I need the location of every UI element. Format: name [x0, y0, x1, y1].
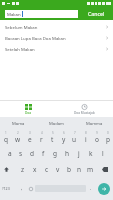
button[interactable]: z: [17, 161, 29, 177]
button[interactable]: f: [37, 145, 49, 161]
button[interactable]: Cancel: [86, 10, 107, 17]
button[interactable]: s: [15, 145, 26, 161]
button[interactable]: Mama: [0, 117, 37, 130]
staticText: Doa Mustajab: [74, 111, 95, 115]
button[interactable]: ?123: [0, 177, 17, 200]
staticText: l: [102, 149, 104, 158]
button[interactable]: n: [74, 161, 85, 177]
staticText: m: [87, 165, 94, 174]
button[interactable]: Setelah Makan: [0, 43, 113, 54]
staticText: h: [65, 149, 70, 158]
staticText: r: [40, 135, 43, 144]
staticText: 8: [85, 131, 87, 135]
button[interactable]: 1: [0, 130, 12, 145]
staticText: Sebelum Makan: [5, 24, 38, 30]
staticText: 7: [74, 131, 76, 135]
button[interactable]: 0: [102, 130, 113, 145]
staticText: Mama: [12, 121, 25, 127]
button[interactable]: h: [61, 145, 73, 161]
button[interactable]: 4: [36, 130, 47, 145]
button[interactable]: Sebelum Makan: [0, 21, 113, 32]
button[interactable]: Mamma: [75, 117, 113, 130]
staticText: Mamma: [86, 121, 103, 127]
button[interactable]: 2: [12, 130, 24, 145]
staticText: a: [8, 149, 12, 158]
staticText: x: [33, 165, 37, 174]
staticText: Cancel: [88, 10, 105, 17]
button[interactable]: c: [41, 161, 52, 177]
staticText: 5: [52, 131, 54, 135]
staticText: s: [19, 149, 23, 158]
staticText: q: [4, 135, 8, 144]
button[interactable]: 9: [91, 130, 102, 145]
staticText: d: [30, 149, 34, 158]
staticText: i: [85, 135, 87, 144]
staticText: 0: [107, 131, 109, 135]
button[interactable]: Doa Mustajab: [56, 101, 113, 117]
staticText: j: [78, 149, 80, 158]
button[interactable]: m: [85, 161, 96, 177]
staticText: 9: [96, 131, 98, 135]
staticText: .: [90, 185, 92, 192]
button[interactable]: Backspace: [96, 161, 113, 177]
button[interactable]: Doa: [0, 101, 56, 117]
button[interactable]: 3: [24, 130, 36, 145]
button[interactable]: Shift: [0, 161, 17, 177]
staticText: ?123: [2, 186, 10, 191]
staticText: 6: [63, 131, 65, 135]
staticText: Madam: [49, 121, 64, 127]
staticText: ,: [21, 185, 23, 192]
staticText: e: [28, 135, 32, 144]
button[interactable]: 8: [80, 130, 91, 145]
staticText: Doa: [25, 111, 32, 115]
button[interactable]: 7: [69, 130, 80, 145]
button[interactable]: k: [85, 145, 97, 161]
button[interactable]: Bacaan Lupa Baca Doa Makan: [0, 32, 113, 43]
staticText: 4: [41, 131, 43, 135]
staticText: w: [15, 135, 21, 144]
staticText: n: [77, 165, 82, 174]
staticText: c: [45, 165, 49, 174]
staticText: Setelah Makan: [5, 46, 35, 52]
staticText: k: [89, 149, 93, 158]
button[interactable]: l: [97, 145, 109, 161]
button[interactable]: Search: [98, 183, 110, 195]
button[interactable]: Period: [86, 177, 95, 200]
staticText: p: [106, 135, 110, 144]
button[interactable]: b: [63, 161, 74, 177]
button[interactable]: g: [49, 145, 61, 161]
button[interactable]: d: [26, 145, 37, 161]
staticText: 1: [5, 131, 7, 135]
staticText: Makan: [7, 11, 21, 17]
staticText: t: [51, 135, 54, 144]
staticText: z: [21, 165, 25, 174]
staticText: b: [67, 165, 71, 174]
staticText: f: [42, 149, 45, 158]
button[interactable]: Madam: [37, 117, 75, 130]
button[interactable]: Makan: [5, 10, 78, 18]
staticText: g: [53, 149, 57, 158]
staticText: Bacaan Lupa Baca Doa Makan: [5, 35, 66, 41]
button[interactable]: Comma: [17, 177, 26, 200]
staticText: 3: [29, 131, 31, 135]
button[interactable]: a: [4, 145, 15, 161]
button[interactable]: 5: [47, 130, 58, 145]
staticText: o: [95, 135, 99, 144]
button[interactable]: j: [73, 145, 85, 161]
button[interactable]: Emoji: [26, 177, 35, 200]
staticText: y: [62, 135, 66, 144]
staticText: v: [56, 165, 60, 174]
button[interactable]: v: [52, 161, 63, 177]
button[interactable]: 6: [58, 130, 69, 145]
button[interactable]: x: [29, 161, 41, 177]
staticText: u: [72, 135, 77, 144]
staticText: 2: [17, 131, 19, 135]
